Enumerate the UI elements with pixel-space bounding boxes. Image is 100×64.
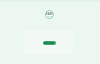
staticText: Continue — [43, 41, 55, 45]
button[interactable]: Continue — [43, 41, 56, 45]
button[interactable]: Verified badge — [45, 10, 54, 19]
staticText: SAFE — [46, 12, 53, 16]
staticText: 100% — [47, 15, 53, 18]
